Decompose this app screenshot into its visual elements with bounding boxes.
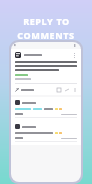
button[interactable] bbox=[15, 88, 36, 92]
button[interactable]: Share bbox=[64, 87, 69, 92]
button[interactable] bbox=[15, 137, 23, 139]
button[interactable]: More options bbox=[71, 52, 77, 58]
button[interactable] bbox=[11, 97, 81, 121]
staticText: REPLY TO bbox=[23, 15, 70, 27]
button[interactable]: Bookmark bbox=[72, 87, 77, 92]
button[interactable] bbox=[15, 113, 23, 115]
button[interactable]: Comment bbox=[56, 87, 61, 92]
button[interactable] bbox=[11, 121, 81, 145]
staticText: COMMENTS bbox=[17, 29, 75, 41]
